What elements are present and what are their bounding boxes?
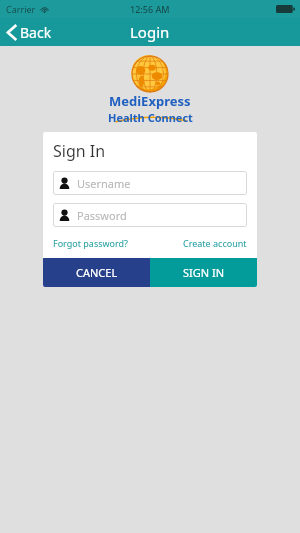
staticText: MediExpress bbox=[109, 92, 191, 110]
staticText: Carrier bbox=[6, 3, 36, 15]
staticText: Back bbox=[20, 23, 52, 42]
staticText: Password bbox=[77, 208, 127, 223]
button[interactable]: CANCEL bbox=[43, 258, 150, 287]
button[interactable]: Forgot password? bbox=[53, 237, 129, 249]
staticText: Username bbox=[77, 176, 131, 191]
staticText: Login bbox=[130, 22, 170, 42]
staticText: Health Connect bbox=[108, 110, 193, 125]
button[interactable]: Username bbox=[53, 171, 247, 195]
staticText: CANCEL bbox=[76, 265, 118, 280]
staticText: Sign In bbox=[53, 140, 106, 162]
button[interactable]: Back bbox=[0, 18, 62, 46]
button[interactable]: Password bbox=[53, 203, 247, 227]
button[interactable]: SIGN IN bbox=[150, 258, 257, 287]
button[interactable]: Create account bbox=[183, 237, 247, 249]
staticText: SIGN IN bbox=[183, 265, 225, 280]
staticText: 12:56 AM bbox=[130, 3, 170, 15]
